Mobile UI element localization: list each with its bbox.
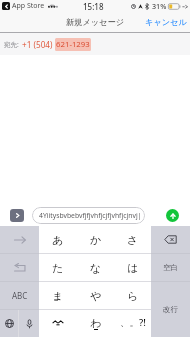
staticText: ら xyxy=(127,289,139,303)
button[interactable]: Send xyxy=(166,209,179,222)
button[interactable]: キャンセル xyxy=(142,14,190,30)
button[interactable]: さ xyxy=(114,226,151,253)
staticText: わ xyxy=(90,316,102,330)
button[interactable]: Return xyxy=(151,282,190,337)
button[interactable]: ま xyxy=(39,282,77,309)
button[interactable]: や xyxy=(77,282,114,309)
staticText: 15:18 xyxy=(83,1,104,12)
staticText: 改行 xyxy=(163,305,178,314)
button[interactable]: た xyxy=(39,254,77,281)
staticText: か xyxy=(90,233,102,247)
staticText: や xyxy=(90,289,102,303)
button[interactable]: Delete xyxy=(151,226,190,253)
staticText: な xyxy=(90,261,102,275)
staticText: は xyxy=(127,261,139,275)
staticText: 新規メッセージ xyxy=(66,17,125,27)
staticText: 31% xyxy=(152,1,167,11)
staticText: キャンセル xyxy=(145,17,187,27)
button[interactable]: ら xyxy=(114,282,151,309)
button[interactable]: Change keyboard xyxy=(0,310,18,337)
button[interactable]: Show apps xyxy=(10,209,24,222)
button[interactable]: Emoticons xyxy=(39,310,77,337)
staticText: あ xyxy=(52,233,64,247)
staticText: 、。?! xyxy=(120,316,146,329)
button[interactable]: Next candidate xyxy=(0,226,39,253)
staticText: 宛先: xyxy=(4,40,19,49)
button[interactable]: Undo xyxy=(0,254,39,281)
button[interactable]: Dictation xyxy=(19,310,39,337)
button[interactable]: わ xyxy=(77,310,114,337)
staticText: App Store xyxy=(12,1,45,11)
staticText: ABC xyxy=(12,290,28,301)
staticText: +1 (504) xyxy=(22,39,53,50)
button[interactable]: あ xyxy=(39,226,77,253)
button[interactable]: 、。?! xyxy=(114,310,151,337)
staticText: さ xyxy=(127,233,139,247)
button[interactable]: ABC xyxy=(0,282,39,309)
button[interactable]: な xyxy=(77,254,114,281)
staticText: た xyxy=(52,261,64,275)
button[interactable]: 4Yiitysbvbebvfjfjvhfjcjfjvhfjcjnvj| xyxy=(32,207,145,224)
button[interactable]: Back to App Store xyxy=(2,2,10,10)
button[interactable]: か xyxy=(77,226,114,253)
staticText: 空白 xyxy=(163,263,178,272)
staticText: ま xyxy=(52,289,64,303)
staticText: 621-1293 xyxy=(56,39,90,50)
staticText: 4Yiitysbvbebvfjfjvhfjcjfjvhfjcjnvj| xyxy=(39,211,142,220)
button[interactable]: は xyxy=(114,254,151,281)
button[interactable]: Space xyxy=(151,254,190,281)
button[interactable]: 宛先: xyxy=(0,33,190,55)
